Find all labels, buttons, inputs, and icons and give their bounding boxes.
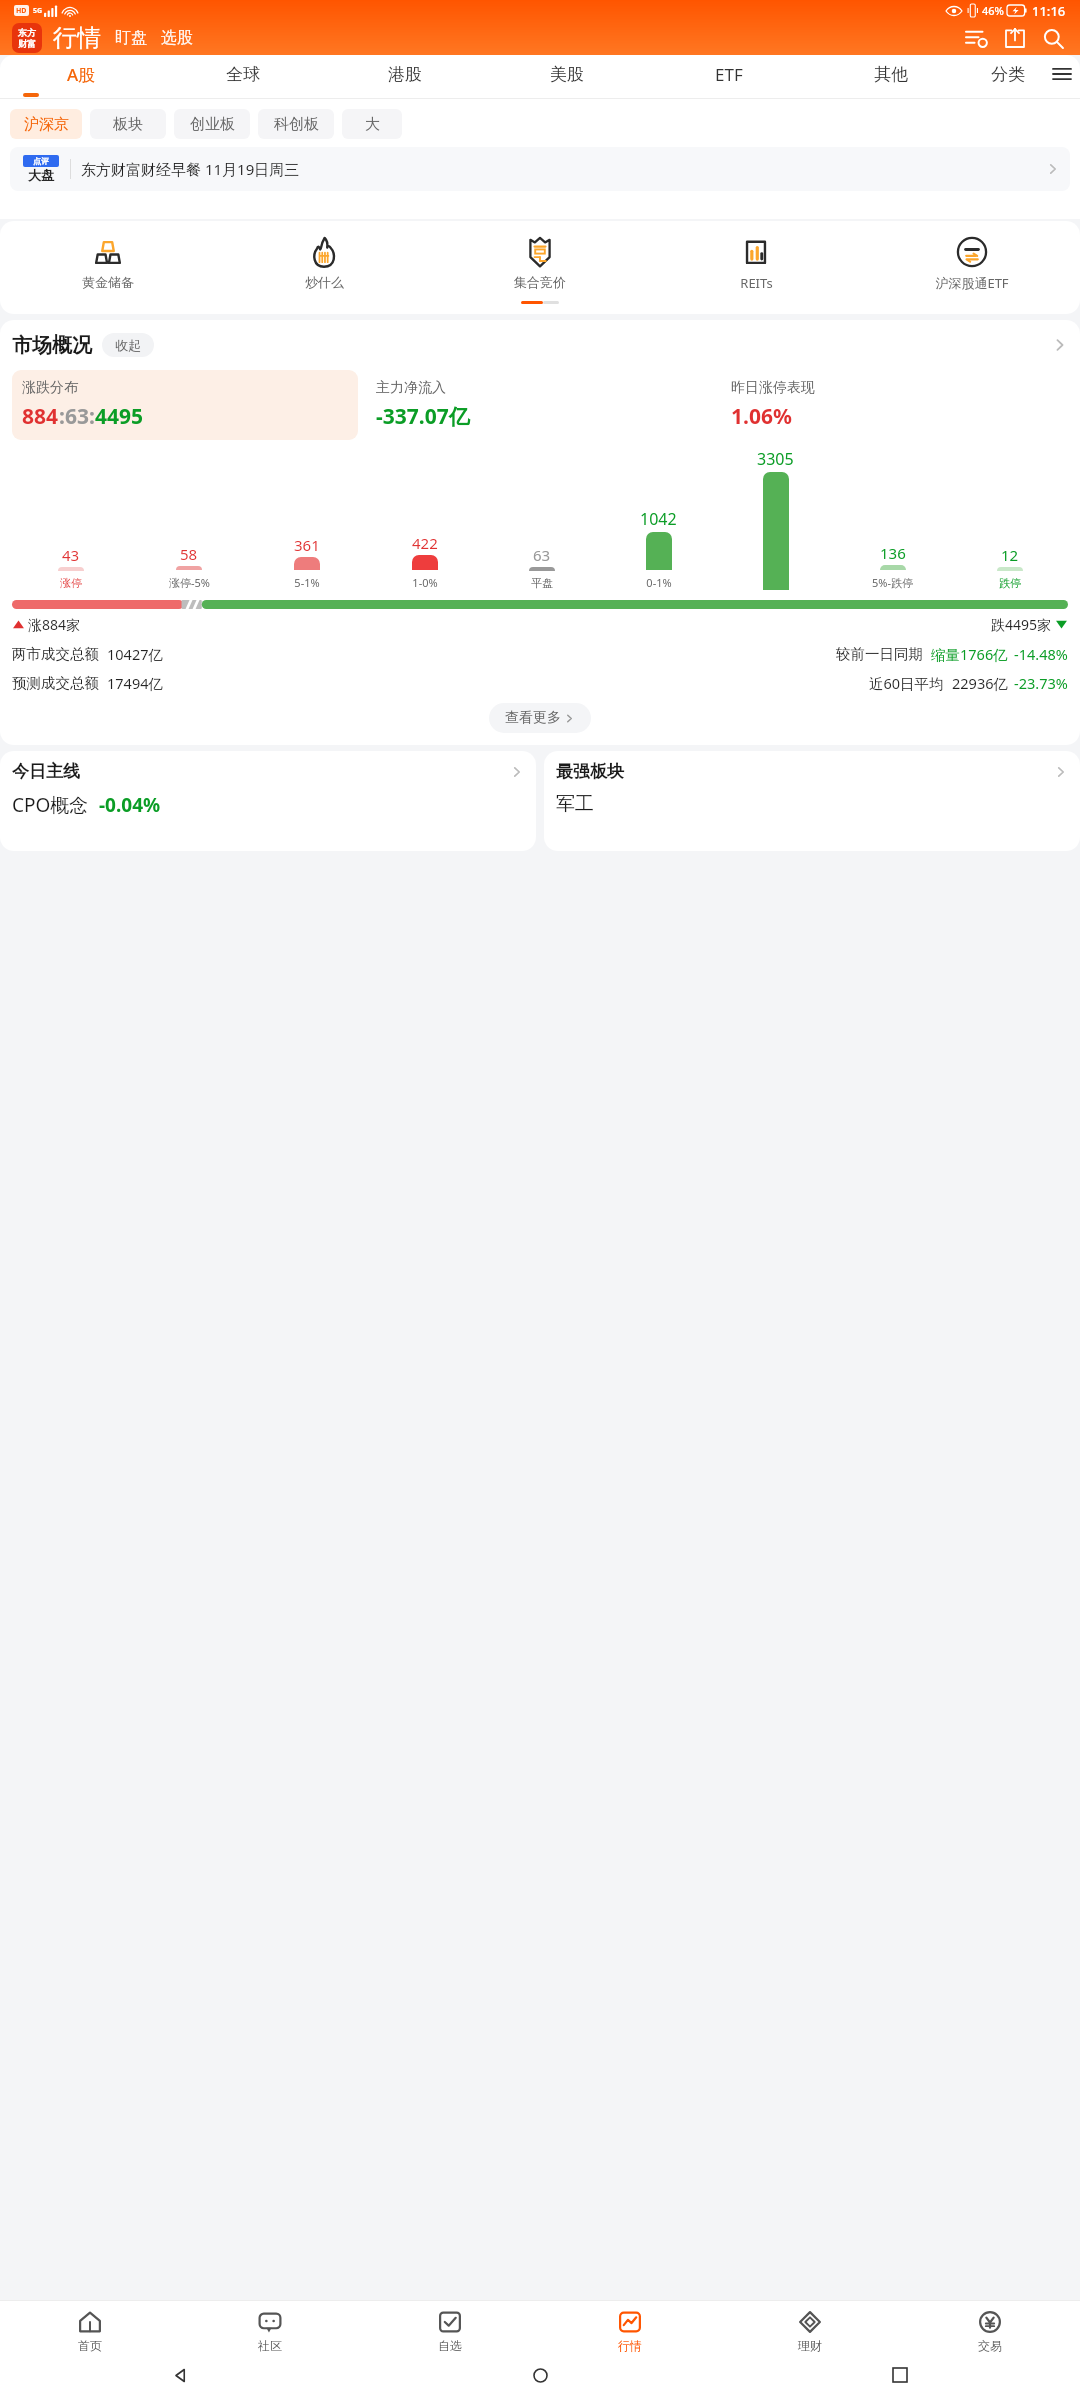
staticText: 两市成交总额: [12, 645, 99, 663]
staticText: 港股: [388, 64, 422, 85]
button[interactable]: 搜索: [1038, 23, 1068, 53]
staticText: 58: [180, 544, 198, 564]
button[interactable]: REITs: [648, 234, 864, 294]
button[interactable]: 昨日涨停表现: [721, 370, 1068, 440]
button[interactable]: 集合竞价: [432, 234, 648, 292]
staticText: 较前一日同期: [836, 645, 923, 663]
button[interactable]: 美股: [486, 55, 648, 93]
staticText: 分类: [991, 64, 1025, 85]
staticText: 市场概况: [12, 333, 92, 358]
staticText: 首页: [78, 2338, 102, 2353]
staticText: 美股: [550, 64, 584, 85]
staticText: 0-1%: [646, 575, 672, 590]
button[interactable]: 交易: [900, 2300, 1080, 2362]
button[interactable]: 板块: [90, 109, 166, 139]
staticText: 1042: [640, 508, 677, 530]
button[interactable]: 港股: [324, 55, 486, 93]
button[interactable]: 行情: [540, 2300, 720, 2362]
button[interactable]: 其他: [810, 55, 972, 93]
button[interactable]: 分类: [972, 55, 1044, 93]
staticText: 点评: [33, 156, 49, 166]
button[interactable]: 东方财富: [12, 23, 42, 53]
staticText: 11:16: [1032, 2, 1066, 20]
staticText: 5-1%: [294, 575, 320, 590]
button[interactable]: 查看更多: [489, 703, 591, 733]
staticText: 涨停: [60, 576, 82, 590]
staticText: REITs: [740, 274, 773, 292]
button[interactable]: 市场概况: [12, 320, 1068, 370]
staticText: 涨884家: [28, 615, 81, 634]
button[interactable]: 沪深京: [10, 109, 82, 139]
button[interactable]: 涨跌分布: [12, 370, 358, 440]
staticText: 422: [412, 533, 438, 553]
staticText: 最强板块: [556, 761, 624, 782]
staticText: 大: [365, 115, 380, 134]
button[interactable]: 主力净流入: [366, 370, 713, 440]
staticText: 预测成交总额: [12, 674, 99, 692]
staticText: CPO概念: [12, 792, 89, 818]
staticText: 科创板: [274, 115, 319, 134]
staticText: 查看更多: [505, 709, 561, 727]
button[interactable]: 分享: [1000, 23, 1030, 53]
staticText: 884: [22, 402, 59, 431]
button[interactable]: 首页: [0, 2300, 180, 2362]
button[interactable]: 创业板: [174, 109, 250, 139]
staticText: 板块: [113, 115, 143, 134]
button[interactable]: 行情: [53, 23, 101, 53]
staticText: 跌停: [999, 576, 1021, 590]
staticText: 行情: [53, 23, 101, 53]
staticText: 沪深京: [24, 115, 69, 134]
staticText: 行情: [618, 2338, 642, 2353]
staticText: 4495: [95, 402, 144, 431]
staticText: 361: [294, 535, 320, 555]
staticText: 1.06%: [731, 402, 792, 431]
button[interactable]: 今日主线: [0, 751, 536, 851]
staticText: 63: [533, 545, 551, 565]
staticText: HD: [16, 6, 27, 16]
button[interactable]: 自选: [360, 2300, 540, 2362]
button[interactable]: ETF: [648, 55, 810, 93]
button[interactable]: 大: [342, 109, 402, 139]
button[interactable]: 炒什么: [216, 234, 432, 292]
button[interactable]: 自选设置: [962, 23, 992, 53]
button[interactable]: 收起: [102, 333, 154, 357]
staticText: 跌4495家: [991, 615, 1052, 634]
staticText: 盯盘: [115, 28, 147, 48]
button[interactable]: A股: [0, 55, 162, 93]
staticText: 5G: [33, 6, 43, 16]
staticText: -337.07亿: [376, 402, 470, 431]
staticText: 缩量1766亿: [931, 644, 1008, 664]
staticText: -0.04%: [99, 792, 161, 818]
staticText: 近60日平均: [869, 673, 944, 693]
staticText: 136: [880, 543, 906, 563]
staticText: 社区: [258, 2338, 282, 2353]
button[interactable]: 科创板: [258, 109, 334, 139]
staticText: 黄金储备: [82, 274, 134, 290]
staticText: 军工: [556, 792, 594, 816]
staticText: 财富: [18, 38, 36, 49]
button[interactable]: 全球: [162, 55, 324, 93]
staticText: 12: [1001, 545, 1019, 565]
staticText: 涨跌分布: [22, 379, 78, 397]
button[interactable]: 最强板块: [544, 751, 1080, 851]
button[interactable]: 盯盘: [115, 24, 147, 52]
button[interactable]: 社区: [180, 2300, 360, 2362]
staticText: 主力净流入: [376, 379, 446, 397]
staticText: 今日主线: [12, 761, 80, 782]
staticText: 理财: [798, 2338, 822, 2353]
button[interactable]: 沪深股通ETF: [864, 234, 1080, 294]
button[interactable]: 黄金储备: [0, 234, 216, 292]
staticText: 集合竞价: [514, 274, 566, 290]
button[interactable]: 点评: [10, 147, 1070, 191]
button[interactable]: 选股: [161, 24, 193, 52]
staticText: 收起: [115, 337, 141, 353]
staticText: A股: [67, 63, 96, 86]
staticText: 东方财富财经早餐 11月19日周三: [81, 159, 300, 179]
staticText: -14.48%: [1014, 644, 1068, 664]
staticText: 43: [62, 545, 80, 565]
staticText: 22936亿: [952, 673, 1008, 693]
staticText: 平盘: [531, 576, 553, 590]
button[interactable]: 全部分类: [1044, 55, 1080, 93]
staticText: 自选: [438, 2338, 462, 2353]
button[interactable]: 理财: [720, 2300, 900, 2362]
